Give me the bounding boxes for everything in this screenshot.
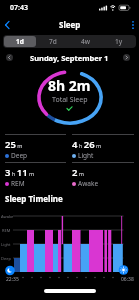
staticText: Awake: [1, 214, 14, 219]
button[interactable]: [2, 19, 14, 31]
staticText: REM: [11, 179, 25, 188]
button[interactable]: 4w: [69, 36, 102, 47]
button[interactable]: 2 m: [72, 162, 134, 188]
button[interactable]: 25 m: [5, 134, 66, 160]
staticText: 3 h 11 m: [5, 166, 35, 179]
staticText: 4w: [81, 37, 90, 46]
staticText: 07:43: [10, 3, 28, 13]
button[interactable]: [123, 54, 130, 61]
staticText: 22:35: [6, 276, 19, 283]
button[interactable]: 1d: [4, 36, 36, 47]
staticText: Sleep: [59, 19, 81, 30]
staticText: 4 h 26 m: [72, 138, 102, 151]
staticText: 7d: [49, 37, 57, 46]
staticText: 25 m: [5, 138, 23, 151]
staticText: REM: [2, 228, 11, 233]
staticText: Light: [78, 151, 94, 160]
staticText: Deep: [11, 151, 28, 160]
staticText: 2 m: [72, 166, 85, 179]
button[interactable]: [6, 54, 13, 61]
staticText: 1y: [115, 37, 123, 46]
staticText: Awake: [78, 179, 99, 188]
staticText: 8h 2m: [48, 76, 91, 95]
button[interactable]: 3 h 11 m: [5, 162, 66, 188]
button[interactable]: 4 h 26 m: [72, 134, 134, 160]
staticText: Sleep Timeline: [5, 193, 63, 204]
button[interactable]: [128, 20, 138, 30]
button[interactable]: 7d: [36, 36, 69, 47]
staticText: Sunday, September 1: [30, 53, 109, 63]
staticText: Total Sleep: [52, 95, 88, 105]
staticText: Light: [1, 242, 11, 247]
staticText: 06:38: [121, 276, 134, 283]
button[interactable]: 1y: [102, 36, 135, 47]
staticText: 1d: [16, 37, 24, 46]
staticText: Deep: [1, 256, 11, 261]
